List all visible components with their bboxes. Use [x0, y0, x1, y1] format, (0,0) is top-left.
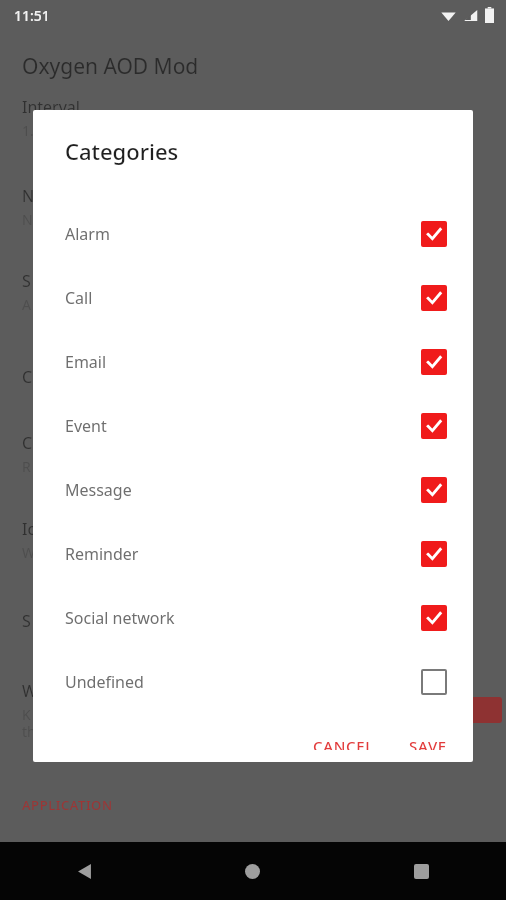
- button[interactable]: Recent apps: [337, 842, 506, 900]
- button[interactable]: Back: [0, 842, 168, 900]
- staticText: Reminder: [65, 543, 139, 565]
- staticText: CANCEL: [313, 736, 375, 750]
- button[interactable]: Email: [33, 330, 473, 394]
- staticText: Ic: [22, 518, 36, 540]
- button[interactable]: Home: [168, 842, 337, 900]
- staticText: Social network: [65, 607, 175, 629]
- staticText: Event: [65, 415, 107, 437]
- button[interactable]: Alarm: [33, 202, 473, 266]
- staticText: 11:51: [14, 6, 50, 25]
- staticText: A: [22, 295, 31, 314]
- staticText: 1.: [22, 121, 34, 140]
- staticText: K: [22, 705, 31, 724]
- staticText: Message: [65, 479, 132, 501]
- staticText: SAVE: [409, 736, 447, 750]
- staticText: N: [22, 185, 35, 207]
- staticText: Categories: [65, 136, 179, 166]
- button[interactable]: SAVE: [399, 724, 457, 762]
- staticText: th: [22, 722, 36, 741]
- staticText: Oxygen AOD Mod: [22, 52, 199, 81]
- button[interactable]: Undefined: [33, 650, 473, 714]
- staticText: Interval: [22, 96, 80, 118]
- staticText: S: [22, 270, 31, 292]
- button[interactable]: CANCEL: [303, 724, 385, 762]
- staticText: R: [22, 457, 31, 476]
- button[interactable]: Message: [33, 458, 473, 522]
- staticText: S: [22, 610, 31, 632]
- staticText: APPLICATION: [22, 796, 113, 814]
- staticText: W: [22, 543, 36, 562]
- staticText: Undefined: [65, 671, 144, 693]
- button[interactable]: Reminder: [33, 522, 473, 586]
- staticText: C: [22, 432, 33, 454]
- button[interactable]: Event: [33, 394, 473, 458]
- staticText: W: [22, 680, 37, 702]
- staticText: Alarm: [65, 223, 110, 245]
- button[interactable]: Social network: [33, 586, 473, 650]
- staticText: Email: [65, 351, 107, 373]
- button[interactable]: Call: [33, 266, 473, 330]
- staticText: C: [22, 366, 33, 388]
- staticText: N: [22, 210, 33, 229]
- staticText: Call: [65, 287, 93, 309]
